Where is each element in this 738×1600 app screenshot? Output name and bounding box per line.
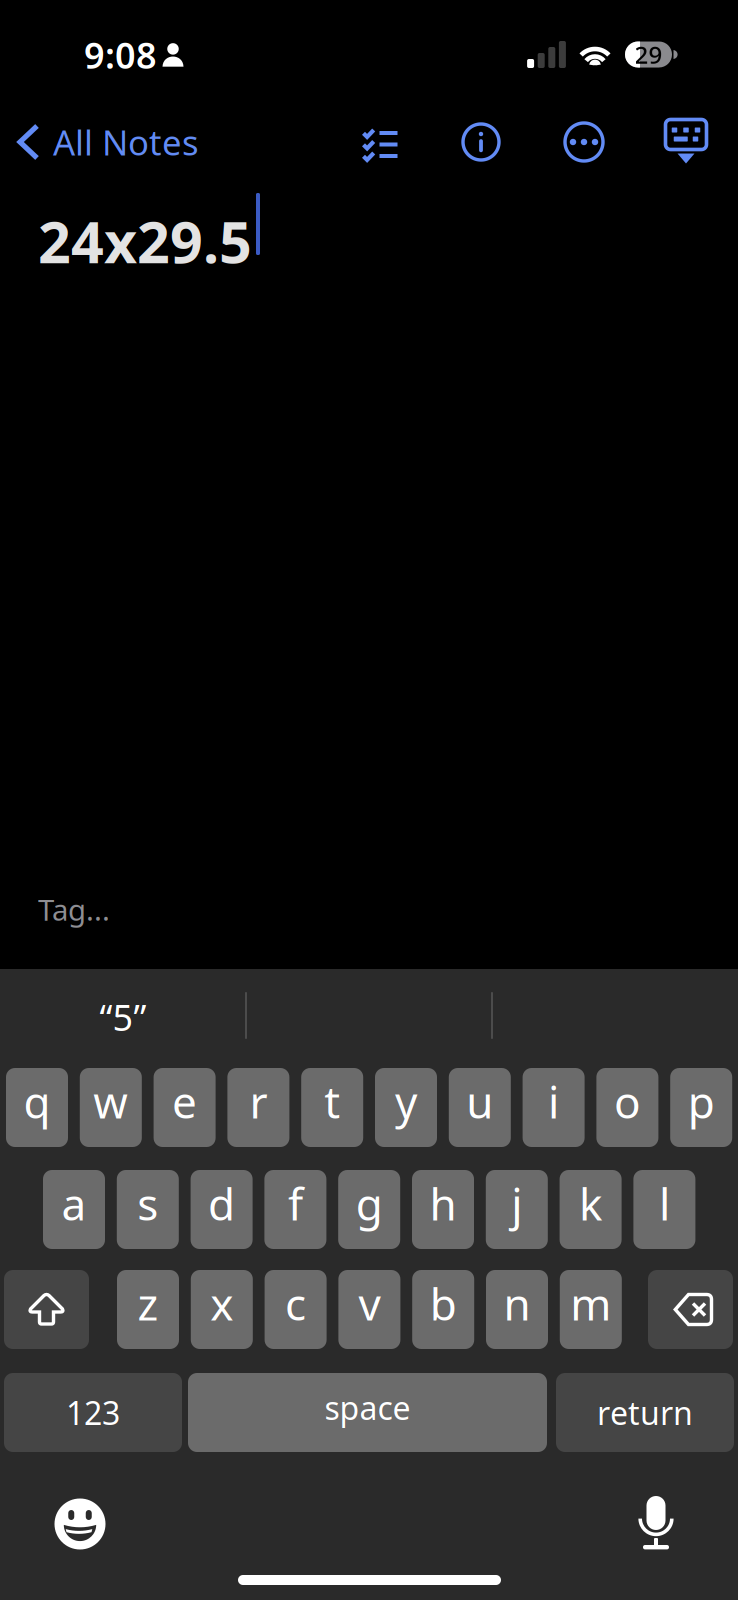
button[interactable]: a <box>43 1170 105 1249</box>
button[interactable]: Info <box>448 109 514 175</box>
staticText: f <box>288 1174 303 1233</box>
button[interactable]: More <box>551 109 617 175</box>
staticText: a <box>61 1174 86 1233</box>
staticText: m <box>570 1274 611 1333</box>
staticText: p <box>688 1072 715 1131</box>
button[interactable]: Hide Keyboard <box>653 109 719 175</box>
staticText: w <box>93 1072 128 1131</box>
button[interactable]: x <box>191 1270 253 1349</box>
staticText: space <box>324 1386 410 1429</box>
button[interactable]: Delete <box>648 1270 733 1349</box>
button[interactable]: v <box>338 1270 400 1349</box>
button[interactable]: o <box>596 1068 658 1147</box>
staticText: 24x29.5 <box>38 203 252 279</box>
staticText: Tag... <box>38 890 110 929</box>
button[interactable]: d <box>191 1170 253 1249</box>
staticText: c <box>285 1274 306 1333</box>
button[interactable]: c <box>265 1270 327 1349</box>
button[interactable]: Checklist <box>347 109 413 175</box>
staticText: k <box>579 1174 602 1233</box>
button[interactable]: i <box>523 1068 585 1147</box>
button[interactable]: r <box>227 1068 289 1147</box>
button[interactable]: 123 <box>4 1373 182 1452</box>
staticText: x <box>210 1274 233 1333</box>
staticText: 9:08 <box>84 31 157 79</box>
staticText: n <box>503 1274 530 1333</box>
button[interactable]: p <box>670 1068 732 1147</box>
staticText: t <box>324 1072 340 1131</box>
button[interactable]: space <box>188 1373 547 1452</box>
staticText: g <box>356 1174 383 1233</box>
staticText: j <box>511 1174 522 1233</box>
staticText: s <box>137 1174 158 1233</box>
staticText: u <box>466 1072 493 1131</box>
button[interactable]: z <box>117 1270 179 1349</box>
staticText: o <box>614 1072 641 1131</box>
staticText: 123 <box>66 1391 120 1434</box>
staticText: v <box>358 1274 380 1333</box>
staticText: e <box>172 1072 197 1131</box>
button[interactable]: t <box>301 1068 363 1147</box>
button[interactable]: g <box>338 1170 400 1249</box>
button[interactable]: e <box>154 1068 216 1147</box>
button[interactable]: q <box>6 1068 68 1147</box>
staticText: d <box>208 1174 235 1233</box>
staticText: 29 <box>634 39 662 70</box>
staticText: h <box>429 1174 456 1233</box>
button[interactable]: m <box>560 1270 622 1349</box>
staticText: “5” <box>99 993 146 1041</box>
button[interactable]: h <box>412 1170 474 1249</box>
button[interactable]: j <box>486 1170 548 1249</box>
button[interactable]: u <box>449 1068 511 1147</box>
button[interactable]: n <box>486 1270 548 1349</box>
button[interactable]: return <box>556 1373 734 1452</box>
staticText: q <box>23 1072 50 1131</box>
staticText: y <box>395 1072 417 1131</box>
button[interactable]: Dictate <box>621 1478 691 1548</box>
staticText: return <box>597 1391 693 1434</box>
staticText: l <box>659 1174 670 1233</box>
button[interactable]: l <box>633 1170 695 1249</box>
staticText: All Notes <box>53 119 199 165</box>
button[interactable]: s <box>117 1170 179 1249</box>
button[interactable]: y <box>375 1068 437 1147</box>
button[interactable]: f <box>264 1170 326 1249</box>
staticText: b <box>430 1274 457 1333</box>
staticText: z <box>137 1274 158 1333</box>
button[interactable]: Emoji <box>45 1489 115 1559</box>
staticText: i <box>548 1072 559 1131</box>
button[interactable]: b <box>412 1270 474 1349</box>
button[interactable]: Shift <box>4 1270 89 1349</box>
staticText: r <box>249 1072 267 1131</box>
button[interactable]: w <box>80 1068 142 1147</box>
button[interactable]: k <box>560 1170 622 1249</box>
button[interactable]: All Notes <box>0 112 260 172</box>
